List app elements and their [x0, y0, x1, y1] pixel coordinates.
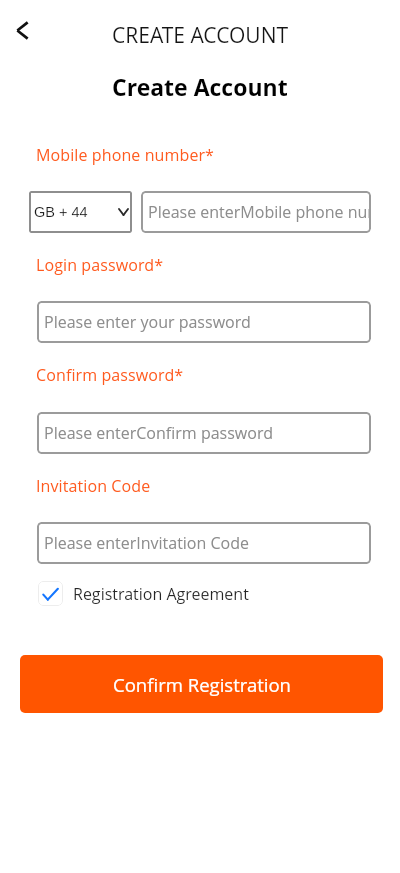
staticText: Please enterConfirm password — [44, 422, 273, 444]
staticText: Invitation Code — [36, 475, 151, 497]
button[interactable]: Registration Agreement — [38, 581, 249, 606]
staticText: GB + 44 — [34, 204, 88, 220]
staticText: Please enterInvitation Code — [44, 532, 250, 554]
staticText: Confirm password* — [36, 364, 184, 386]
button[interactable]: Please enterInvitation Code — [37, 522, 371, 564]
staticText: CREATE ACCOUNT — [112, 21, 289, 50]
staticText: Please enterMobile phone number — [148, 201, 369, 223]
button[interactable]: Back — [0, 8, 44, 52]
button[interactable]: Please enterMobile phone number — [141, 191, 371, 233]
staticText: Confirm Registration — [113, 672, 291, 697]
button[interactable]: Country code GB + 44 — [29, 191, 132, 233]
staticText: Registration Agreement — [73, 583, 249, 605]
staticText: Mobile phone number* — [36, 144, 215, 166]
staticText: Login password* — [36, 254, 164, 276]
staticText: Create Account — [112, 71, 288, 102]
button[interactable]: Please enterConfirm password — [37, 412, 371, 454]
button[interactable]: Confirm Registration — [20, 655, 383, 713]
button[interactable]: Please enter your password — [37, 301, 371, 343]
staticText: Please enter your password — [44, 311, 251, 333]
